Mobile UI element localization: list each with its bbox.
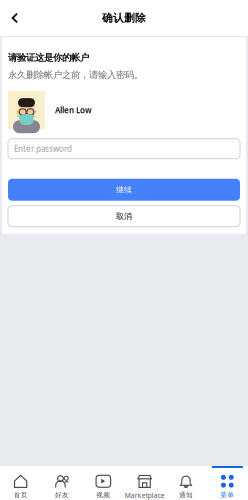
staticText: 取消 <box>116 211 132 221</box>
staticText: 请验证这是你的帐户 <box>8 52 89 63</box>
staticText: 好友 <box>55 491 69 499</box>
button[interactable]: 通知 <box>165 466 207 500</box>
button[interactable]: Back <box>0 0 30 36</box>
button[interactable]: 取消 <box>8 206 240 227</box>
button[interactable]: 菜单 <box>207 466 248 500</box>
staticText: 继续 <box>116 185 132 195</box>
button[interactable]: Marketplace <box>124 466 165 500</box>
staticText: 首页 <box>14 491 28 499</box>
button[interactable]: 继续 <box>8 179 240 201</box>
button[interactable]: 好友 <box>41 466 83 500</box>
button[interactable]: 视频 <box>83 466 124 500</box>
staticText: 确认删除 <box>102 11 146 24</box>
button[interactable]: 首页 <box>0 466 41 500</box>
staticText: 通知 <box>179 491 193 499</box>
staticText: Allen Low <box>55 105 92 115</box>
staticText: 永久删除帐户之前，请输入密码。 <box>8 69 143 81</box>
staticText: 菜单 <box>220 491 234 499</box>
staticText: 视频 <box>96 491 110 499</box>
staticText: Enter password <box>14 143 72 154</box>
staticText: Marketplace <box>125 491 165 500</box>
